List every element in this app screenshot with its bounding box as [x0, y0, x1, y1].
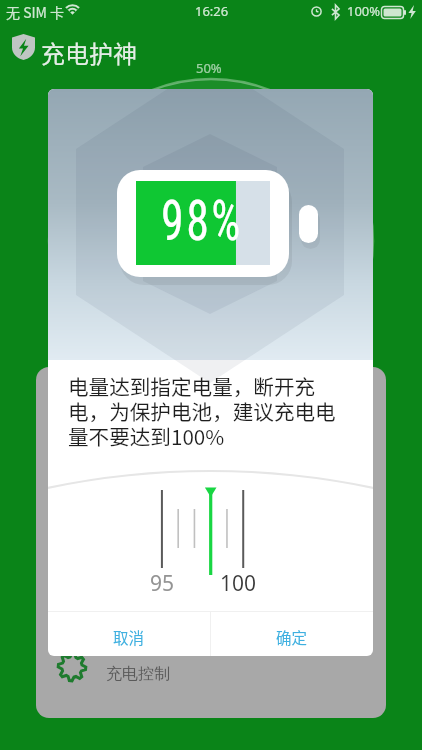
staticText: 无 SIM 卡 — [6, 2, 65, 22]
staticText: 100% — [347, 2, 381, 20]
staticText: 充电控制 — [106, 664, 170, 684]
button[interactable]: 确定 — [211, 612, 373, 656]
staticText: 50% — [196, 59, 222, 77]
staticText: 充电护神 — [41, 35, 137, 70]
staticText: 电量达到指定电量，断开充 电，为保护电池，建议充电电 量不要达到100% — [68, 371, 358, 451]
staticText: 98% — [161, 188, 243, 254]
staticText: 取消 — [113, 626, 145, 648]
button[interactable]: 取消 — [48, 612, 210, 656]
staticText: 16:26 — [195, 2, 229, 20]
staticText: 确定 — [276, 626, 308, 648]
staticText: 100 — [220, 569, 257, 595]
staticText: 95 — [150, 569, 175, 595]
